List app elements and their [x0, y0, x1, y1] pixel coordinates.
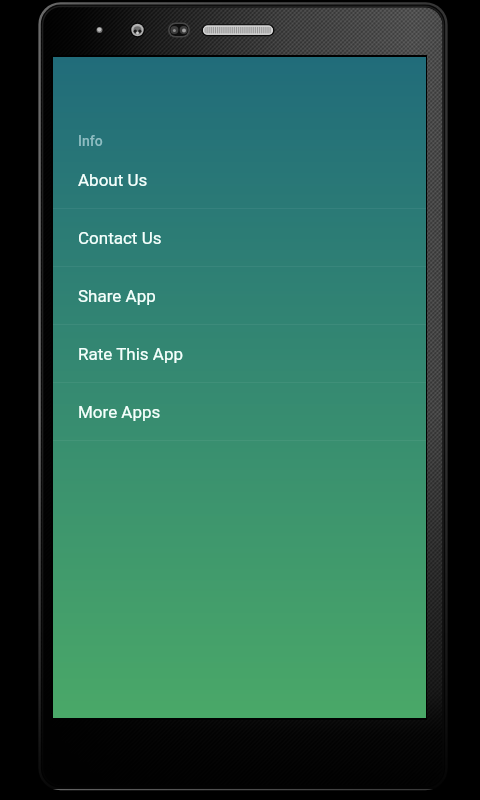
- staticText: About Us: [78, 170, 148, 190]
- button[interactable]: Rate This App: [53, 325, 426, 383]
- staticText: Rate This App: [78, 344, 183, 364]
- staticText: More Apps: [78, 402, 161, 422]
- button[interactable]: Contact Us: [53, 209, 426, 267]
- button[interactable]: About Us: [53, 151, 426, 209]
- staticText: Share App: [78, 286, 156, 306]
- button[interactable]: More Apps: [53, 383, 426, 441]
- staticText: Info: [78, 133, 103, 149]
- button[interactable]: Share App: [53, 267, 426, 325]
- staticText: Contact Us: [78, 228, 162, 248]
